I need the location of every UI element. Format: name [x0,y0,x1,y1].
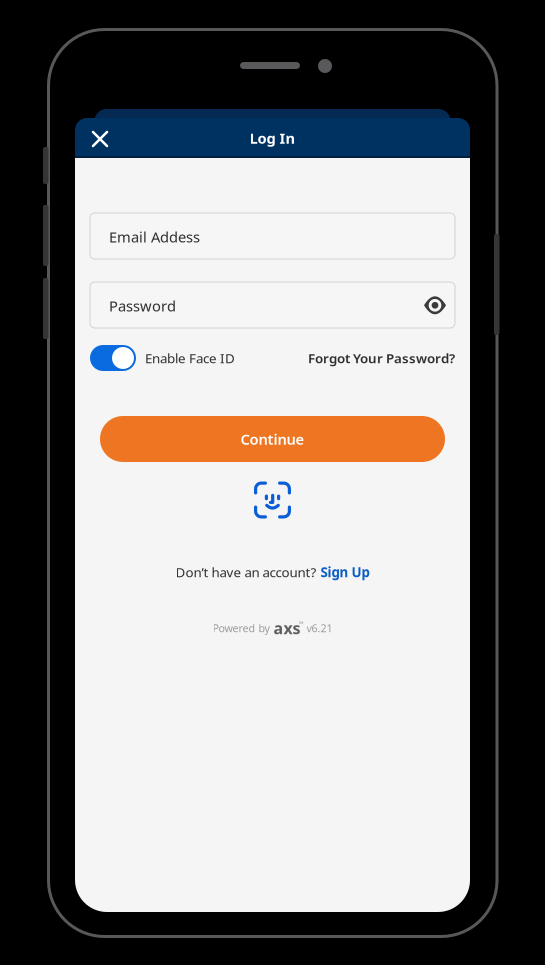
staticText: Powered by [212,621,269,635]
button[interactable]: Enable Face ID [90,345,235,371]
button[interactable]: Don’t have an account? [90,562,455,582]
button[interactable]: Forgot Your Password? [295,345,455,371]
staticText: Sign Up [320,563,369,581]
staticText: axs [273,617,300,639]
staticText: v6.21 [306,621,332,635]
button[interactable]: Email Addess [90,213,455,259]
staticText: Log In [249,128,295,148]
staticText: Don’t have an account? [175,563,316,581]
button[interactable]: Continue [100,416,445,462]
staticText: Password [109,296,176,315]
button[interactable]: Password [90,282,455,328]
staticText: Enable Face ID [145,349,235,367]
button[interactable]: Close [78,119,122,159]
staticText: Forgot Your Password? [308,349,455,367]
staticText: ™ [298,619,303,628]
staticText: Continue [240,429,304,449]
button[interactable]: Sign in with Face ID [242,478,302,522]
staticText: Email Addess [109,227,200,246]
